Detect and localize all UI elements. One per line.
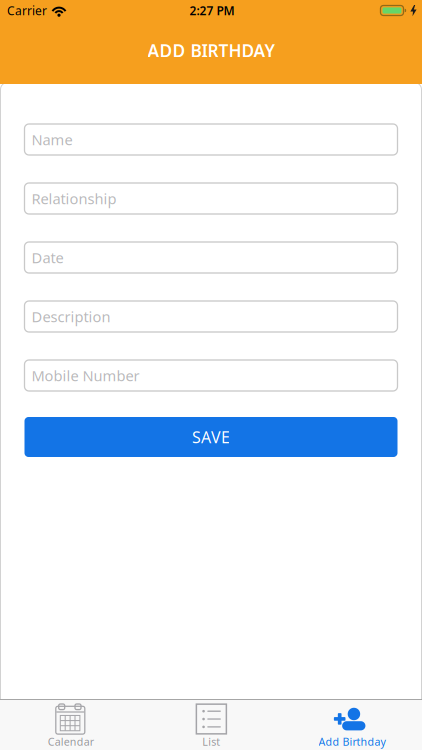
staticText: Description — [31, 307, 110, 326]
staticText: Mobile Number — [31, 366, 139, 385]
button[interactable]: Calendar — [0, 699, 141, 750]
staticText: Date — [31, 248, 63, 267]
textField[interactable]: Name — [24, 124, 397, 154]
textField[interactable]: Description — [24, 301, 397, 331]
staticText: SAVE — [192, 426, 230, 448]
textField[interactable]: Mobile Number — [24, 360, 397, 390]
staticText: Add Birthday — [318, 734, 385, 749]
staticText: Description — [24, 301, 147, 331]
textField[interactable]: Relationship — [24, 183, 397, 213]
staticText: ADD BIRTHDAY — [147, 39, 274, 62]
staticText: Name — [24, 124, 88, 154]
staticText: Relationship — [31, 189, 116, 208]
staticText: List — [202, 734, 220, 749]
button[interactable]: List — [141, 699, 281, 750]
staticText: Mobile Number — [24, 360, 192, 390]
textField[interactable]: Date — [24, 242, 397, 272]
staticText: 2:27 PM — [189, 3, 234, 18]
staticText: Name — [31, 130, 72, 149]
staticText: Calendar — [48, 734, 94, 749]
button[interactable]: SAVE — [24, 417, 397, 457]
staticText: Carrier — [7, 2, 47, 18]
staticText: Relationship — [24, 183, 157, 213]
button[interactable]: Add Birthday — [281, 699, 422, 750]
staticText: Date — [24, 242, 75, 272]
